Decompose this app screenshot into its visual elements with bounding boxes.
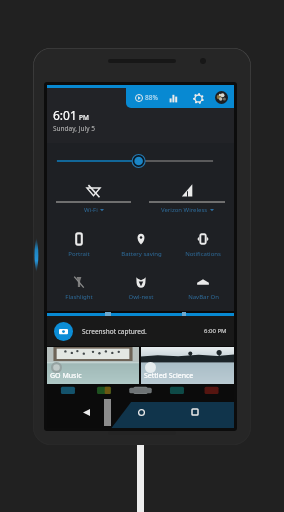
button[interactable]: Back <box>76 402 96 422</box>
button[interactable]: Battery 88% <box>135 93 158 102</box>
button[interactable]: User profile <box>215 91 228 104</box>
staticText: 88% <box>145 93 158 102</box>
staticText: Wi-Fi <box>84 206 98 214</box>
button[interactable]: Owl-nest <box>110 270 172 308</box>
button[interactable]: Recents <box>185 402 205 422</box>
staticText: Screenshot captured. <box>82 327 147 336</box>
button[interactable]: Notifications <box>172 227 234 265</box>
staticText: Verizon Wireless <box>161 206 208 214</box>
button[interactable]: Battery saving <box>110 227 172 265</box>
staticText: Portrait <box>68 250 90 258</box>
button[interactable]: Settings <box>191 91 205 105</box>
button[interactable]: Screenshot captured. <box>47 316 234 346</box>
button[interactable]: Wi-Fi <box>47 179 140 219</box>
button[interactable]: Flashlight <box>47 270 110 308</box>
staticText: Settled Science <box>144 371 194 381</box>
button[interactable]: Usage <box>167 91 181 105</box>
staticText: Flashlight <box>65 293 93 301</box>
button[interactable]: Verizon Wireless <box>140 179 234 219</box>
staticText: 6:01 <box>53 107 77 123</box>
button[interactable]: Settled Science <box>141 347 234 384</box>
button[interactable]: GO Music <box>47 347 139 384</box>
staticText: Battery saving <box>121 250 162 258</box>
staticText: 6:00 PM <box>204 327 227 335</box>
button[interactable]: Portrait <box>47 227 110 265</box>
staticText: NavBar On <box>188 293 219 301</box>
staticText: Owl-nest <box>128 293 154 301</box>
button[interactable]: NavBar On <box>172 270 234 308</box>
staticText: Sunday, July 5 <box>53 124 95 133</box>
staticText: PM <box>79 113 89 122</box>
button[interactable]: Home <box>131 402 151 422</box>
staticText: GO Music <box>50 371 82 381</box>
staticText: Notifications <box>185 250 221 258</box>
